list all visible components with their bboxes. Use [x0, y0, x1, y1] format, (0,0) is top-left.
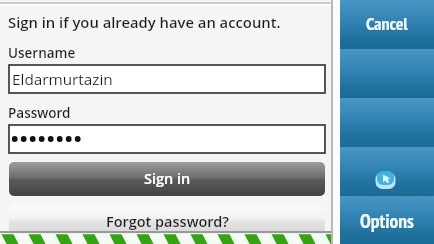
button[interactable]: Forgot password? — [9, 205, 325, 234]
button[interactable] — [340, 49, 434, 98]
staticText: Options — [360, 208, 414, 233]
staticText: Username — [8, 44, 76, 62]
staticText: Forgot password? — [106, 212, 229, 232]
staticText: Sign in — [144, 169, 191, 189]
staticText: Cancel — [366, 12, 408, 35]
staticText: Sign in if you already have an account. — [8, 12, 281, 32]
button[interactable] — [340, 98, 434, 147]
staticText: Eldarmurtazin — [12, 69, 113, 90]
button[interactable]: Cancel — [340, 0, 434, 49]
button[interactable] — [9, 125, 325, 153]
other: Pointer — [375, 170, 396, 189]
button[interactable]: Eldarmurtazin — [9, 65, 325, 93]
staticText: mobile-review.com — [357, 186, 434, 200]
button[interactable] — [340, 147, 434, 196]
button[interactable]: Options — [340, 196, 434, 244]
button[interactable]: Sign in — [9, 162, 325, 196]
staticText: Password — [8, 104, 71, 122]
